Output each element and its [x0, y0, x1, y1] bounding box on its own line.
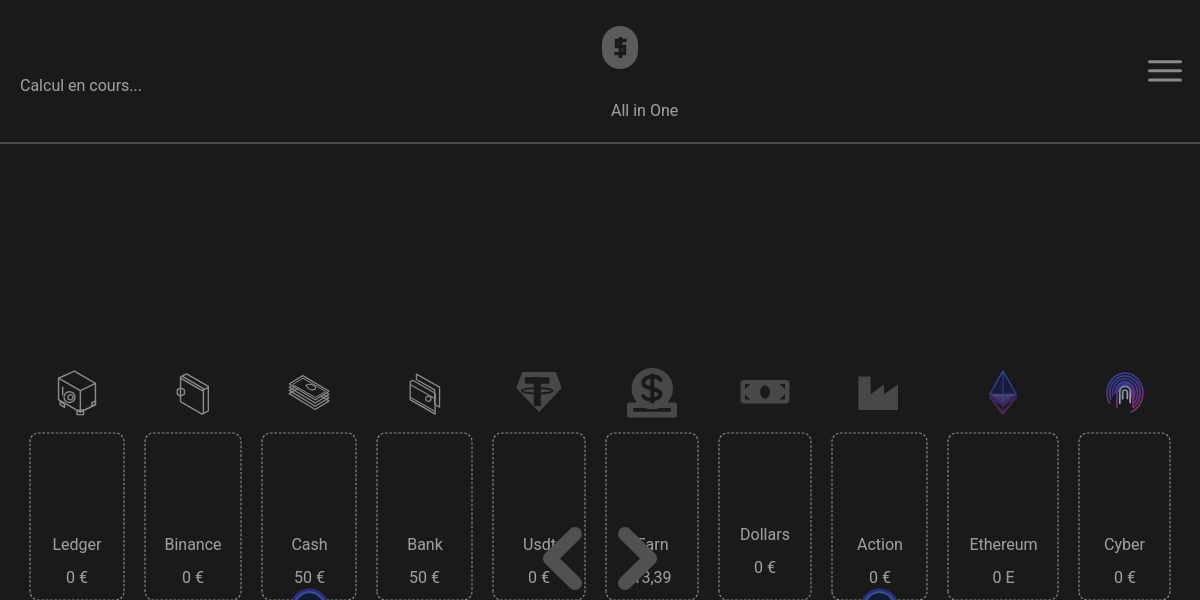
- button[interactable]: Cash: [262, 433, 356, 600]
- button[interactable]: Next: [609, 518, 665, 598]
- staticText: All in One: [611, 101, 679, 120]
- staticText: 0 €: [1114, 568, 1136, 587]
- staticText: Bank: [407, 535, 443, 554]
- staticText: Usdt: [523, 535, 556, 554]
- button[interactable]: Cyber: [1079, 433, 1170, 600]
- staticText: 50 €: [294, 568, 325, 587]
- staticText: 0 €: [754, 558, 776, 577]
- staticText: 13,39: [632, 568, 672, 587]
- button[interactable]: Menu: [1141, 48, 1189, 94]
- button[interactable]: Dollars: [719, 433, 811, 600]
- button[interactable]: Earn: [606, 433, 698, 600]
- staticText: 0 €: [66, 568, 88, 587]
- staticText: 0 €: [869, 568, 891, 587]
- button[interactable]: Usdt: [493, 433, 585, 600]
- staticText: 0 €: [182, 568, 204, 587]
- button[interactable]: Previous: [534, 518, 590, 598]
- button[interactable]: Ledger: [30, 433, 124, 600]
- staticText: Cyber: [1104, 535, 1145, 554]
- staticText: Binance: [164, 535, 222, 554]
- staticText: Dollars: [740, 525, 790, 544]
- staticText: Cash: [291, 535, 328, 554]
- staticText: Calcul en cours...: [20, 76, 143, 95]
- button[interactable]: Ethereum: [948, 433, 1058, 600]
- staticText: Earn: [636, 535, 669, 554]
- staticText: 50 €: [409, 568, 440, 587]
- button[interactable]: Action: [832, 433, 927, 600]
- staticText: Ethereum: [969, 535, 1038, 554]
- staticText: 0 E: [992, 568, 1015, 587]
- staticText: Ledger: [52, 535, 102, 554]
- staticText: Action: [857, 535, 903, 554]
- button[interactable]: Binance: [145, 433, 241, 600]
- button[interactable]: Bank: [377, 433, 472, 600]
- staticText: 0 €: [528, 568, 550, 587]
